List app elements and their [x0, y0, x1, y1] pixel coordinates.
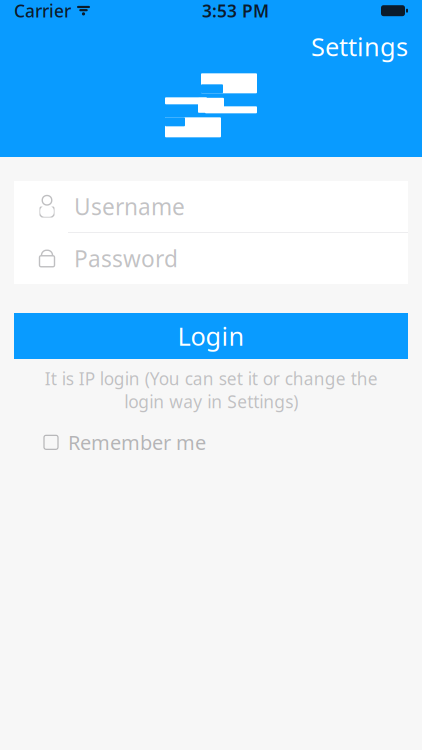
- staticText: Remember me: [68, 429, 206, 456]
- button[interactable]: Password: [14, 233, 408, 284]
- staticText: Username: [74, 191, 185, 221]
- staticText: It is IP login (You can set it or change…: [44, 367, 377, 413]
- staticText: 3:53 PM: [202, 0, 269, 22]
- staticText: Carrier: [14, 0, 71, 22]
- staticText: Password: [74, 243, 178, 273]
- button[interactable]: Username: [14, 181, 408, 232]
- staticText: Settings: [311, 30, 408, 63]
- button[interactable]: Remember me: [40, 423, 210, 462]
- staticText: Login: [177, 319, 244, 353]
- button[interactable]: Settings: [299, 26, 420, 67]
- button[interactable]: Login: [14, 313, 408, 359]
